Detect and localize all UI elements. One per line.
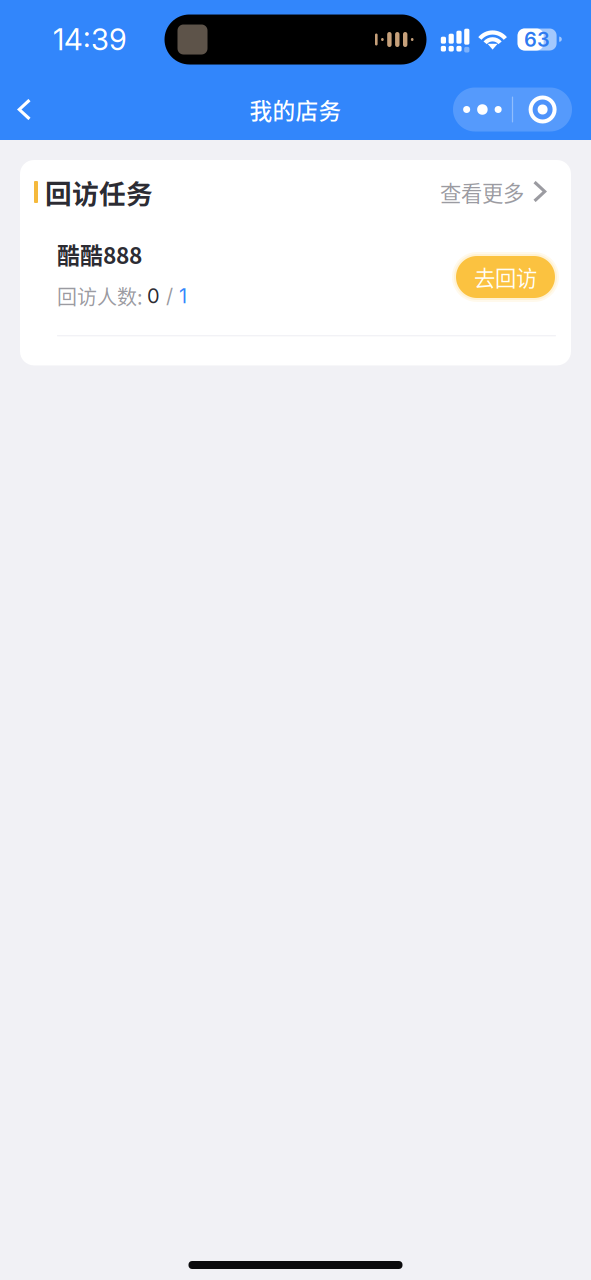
staticText: 回访任务 [45,173,153,211]
button[interactable]: 查看更多 [440,175,550,209]
staticText: 14:39 [53,22,127,57]
staticText: 查看更多 [440,177,524,207]
staticText: / [160,284,179,308]
staticText: 0 [147,284,160,308]
staticText: 回访人数: [57,281,147,310]
staticText: 我的店务 [249,93,341,126]
button[interactable]: More options and mini program menu [453,87,572,131]
staticText: 63 [524,27,550,52]
button[interactable]: Back [0,80,48,138]
staticText: 去回访 [474,262,537,292]
button[interactable]: 去回访 [452,252,559,302]
staticText: 酷酷888 [57,238,142,270]
staticText: 1 [179,284,187,308]
